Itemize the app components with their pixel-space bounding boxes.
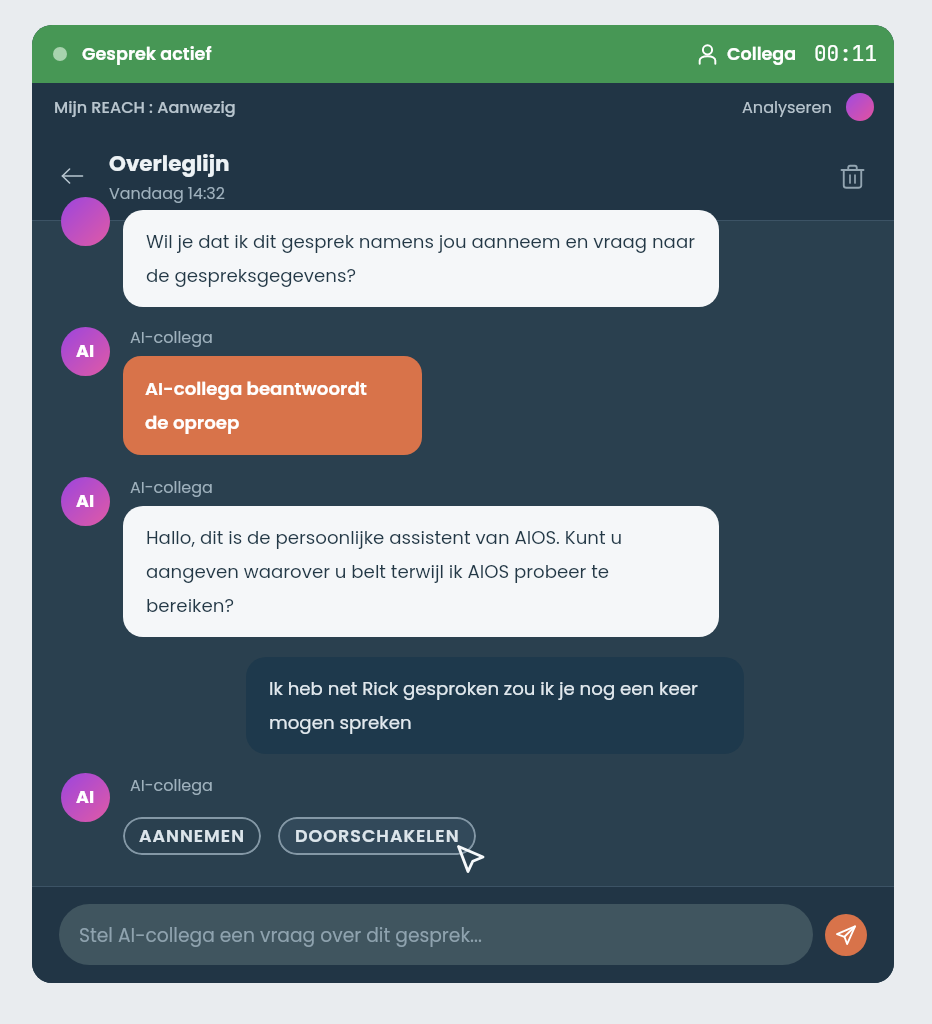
staticText: AANNEMEN — [139, 824, 245, 849]
staticText: DOORSCHAKELEN — [295, 824, 460, 849]
staticText: AI — [76, 339, 95, 364]
staticText: AI — [76, 785, 95, 810]
button[interactable]: Send — [825, 914, 867, 956]
button[interactable]: Stel AI-collega een vraag over dit gespr… — [59, 904, 813, 965]
staticText: Mijn REACH : Aanwezig — [54, 96, 236, 119]
staticText: Gesprek actief — [82, 42, 212, 67]
staticText: Analyseren — [742, 96, 832, 119]
button[interactable]: Back — [49, 153, 95, 199]
staticText: Collega — [727, 42, 797, 67]
staticText: Stel AI-collega een vraag over dit gespr… — [79, 922, 482, 948]
other: Account — [696, 43, 719, 66]
staticText: AI-collega — [130, 774, 213, 796]
staticText: Ik heb net Rick gesproken zou ik je nog … — [269, 676, 698, 735]
button[interactable]: Delete conversation — [830, 154, 874, 198]
staticText: Hallo, dit is de persoonlijke assistent … — [146, 525, 623, 618]
staticText: AI-collega — [130, 476, 213, 498]
staticText: 00:11 — [814, 40, 877, 68]
staticText: Wil je dat ik dit gesprek namens jou aan… — [146, 229, 695, 288]
staticText: AI — [76, 489, 95, 514]
button[interactable]: AANNEMEN — [123, 817, 261, 855]
button[interactable]: Analyseren avatar — [846, 93, 874, 121]
staticText: Vandaag 14:32 — [109, 182, 225, 204]
staticText: AI-collega beantwoordt de oproep — [145, 376, 367, 435]
button[interactable]: DOORSCHAKELEN — [278, 817, 476, 855]
staticText: Overleglijn — [109, 148, 230, 178]
staticText: AI-collega — [130, 326, 213, 348]
